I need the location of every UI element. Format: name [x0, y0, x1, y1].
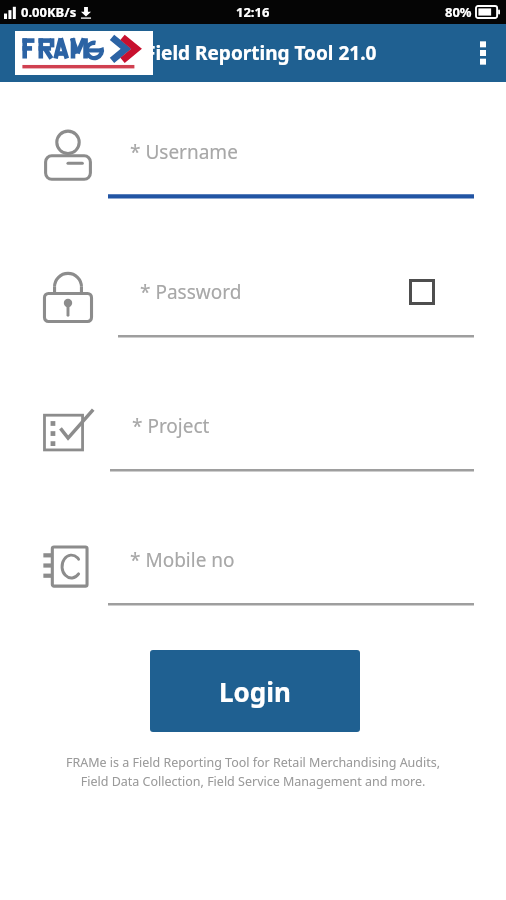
staticText: 80%: [445, 3, 472, 21]
staticText: Field Reporting Tool 21.0: [145, 40, 377, 66]
staticText: FRAMe is a Field Reporting Tool for Reta…: [20, 754, 486, 790]
other: Mobile number: [40, 538, 96, 594]
button[interactable]: Login: [150, 650, 360, 732]
staticText: Login: [219, 674, 291, 709]
staticText: * Project: [132, 413, 210, 439]
button[interactable]: Show password: [408, 278, 436, 306]
other: Project: [40, 404, 96, 460]
other: Password: [40, 270, 96, 326]
staticText: 12:16: [236, 3, 270, 21]
button[interactable]: Username: [0, 112, 506, 204]
staticText: * Password: [140, 279, 242, 305]
button[interactable]: Mobile number: [0, 520, 506, 612]
button[interactable]: More options: [460, 30, 506, 76]
other: Username: [40, 130, 96, 186]
staticText: 0.00KB/s: [21, 3, 77, 21]
staticText: * Mobile no: [130, 547, 235, 573]
button[interactable]: Password: [0, 252, 506, 344]
button[interactable]: FRAMe logo: [14, 30, 154, 76]
button[interactable]: Project: [0, 386, 506, 478]
staticText: * Username: [130, 139, 238, 165]
